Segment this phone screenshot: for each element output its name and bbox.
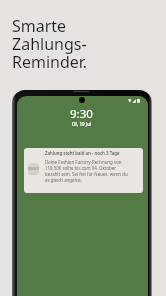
- staticText: FASHION: [28, 167, 39, 171]
- button[interactable]: FASHION: [24, 148, 143, 193]
- staticText: Zahlung steht bald an - noch 3 Tage: [45, 150, 120, 156]
- staticText: Smarte Zahlungs- Reminder.: [12, 15, 88, 73]
- staticText: DI, 19 Jul: [72, 121, 92, 127]
- staticText: 9:30: [70, 106, 93, 122]
- staticText: Deine Fashion Factory-Rechnung von 118,5…: [45, 159, 129, 183]
